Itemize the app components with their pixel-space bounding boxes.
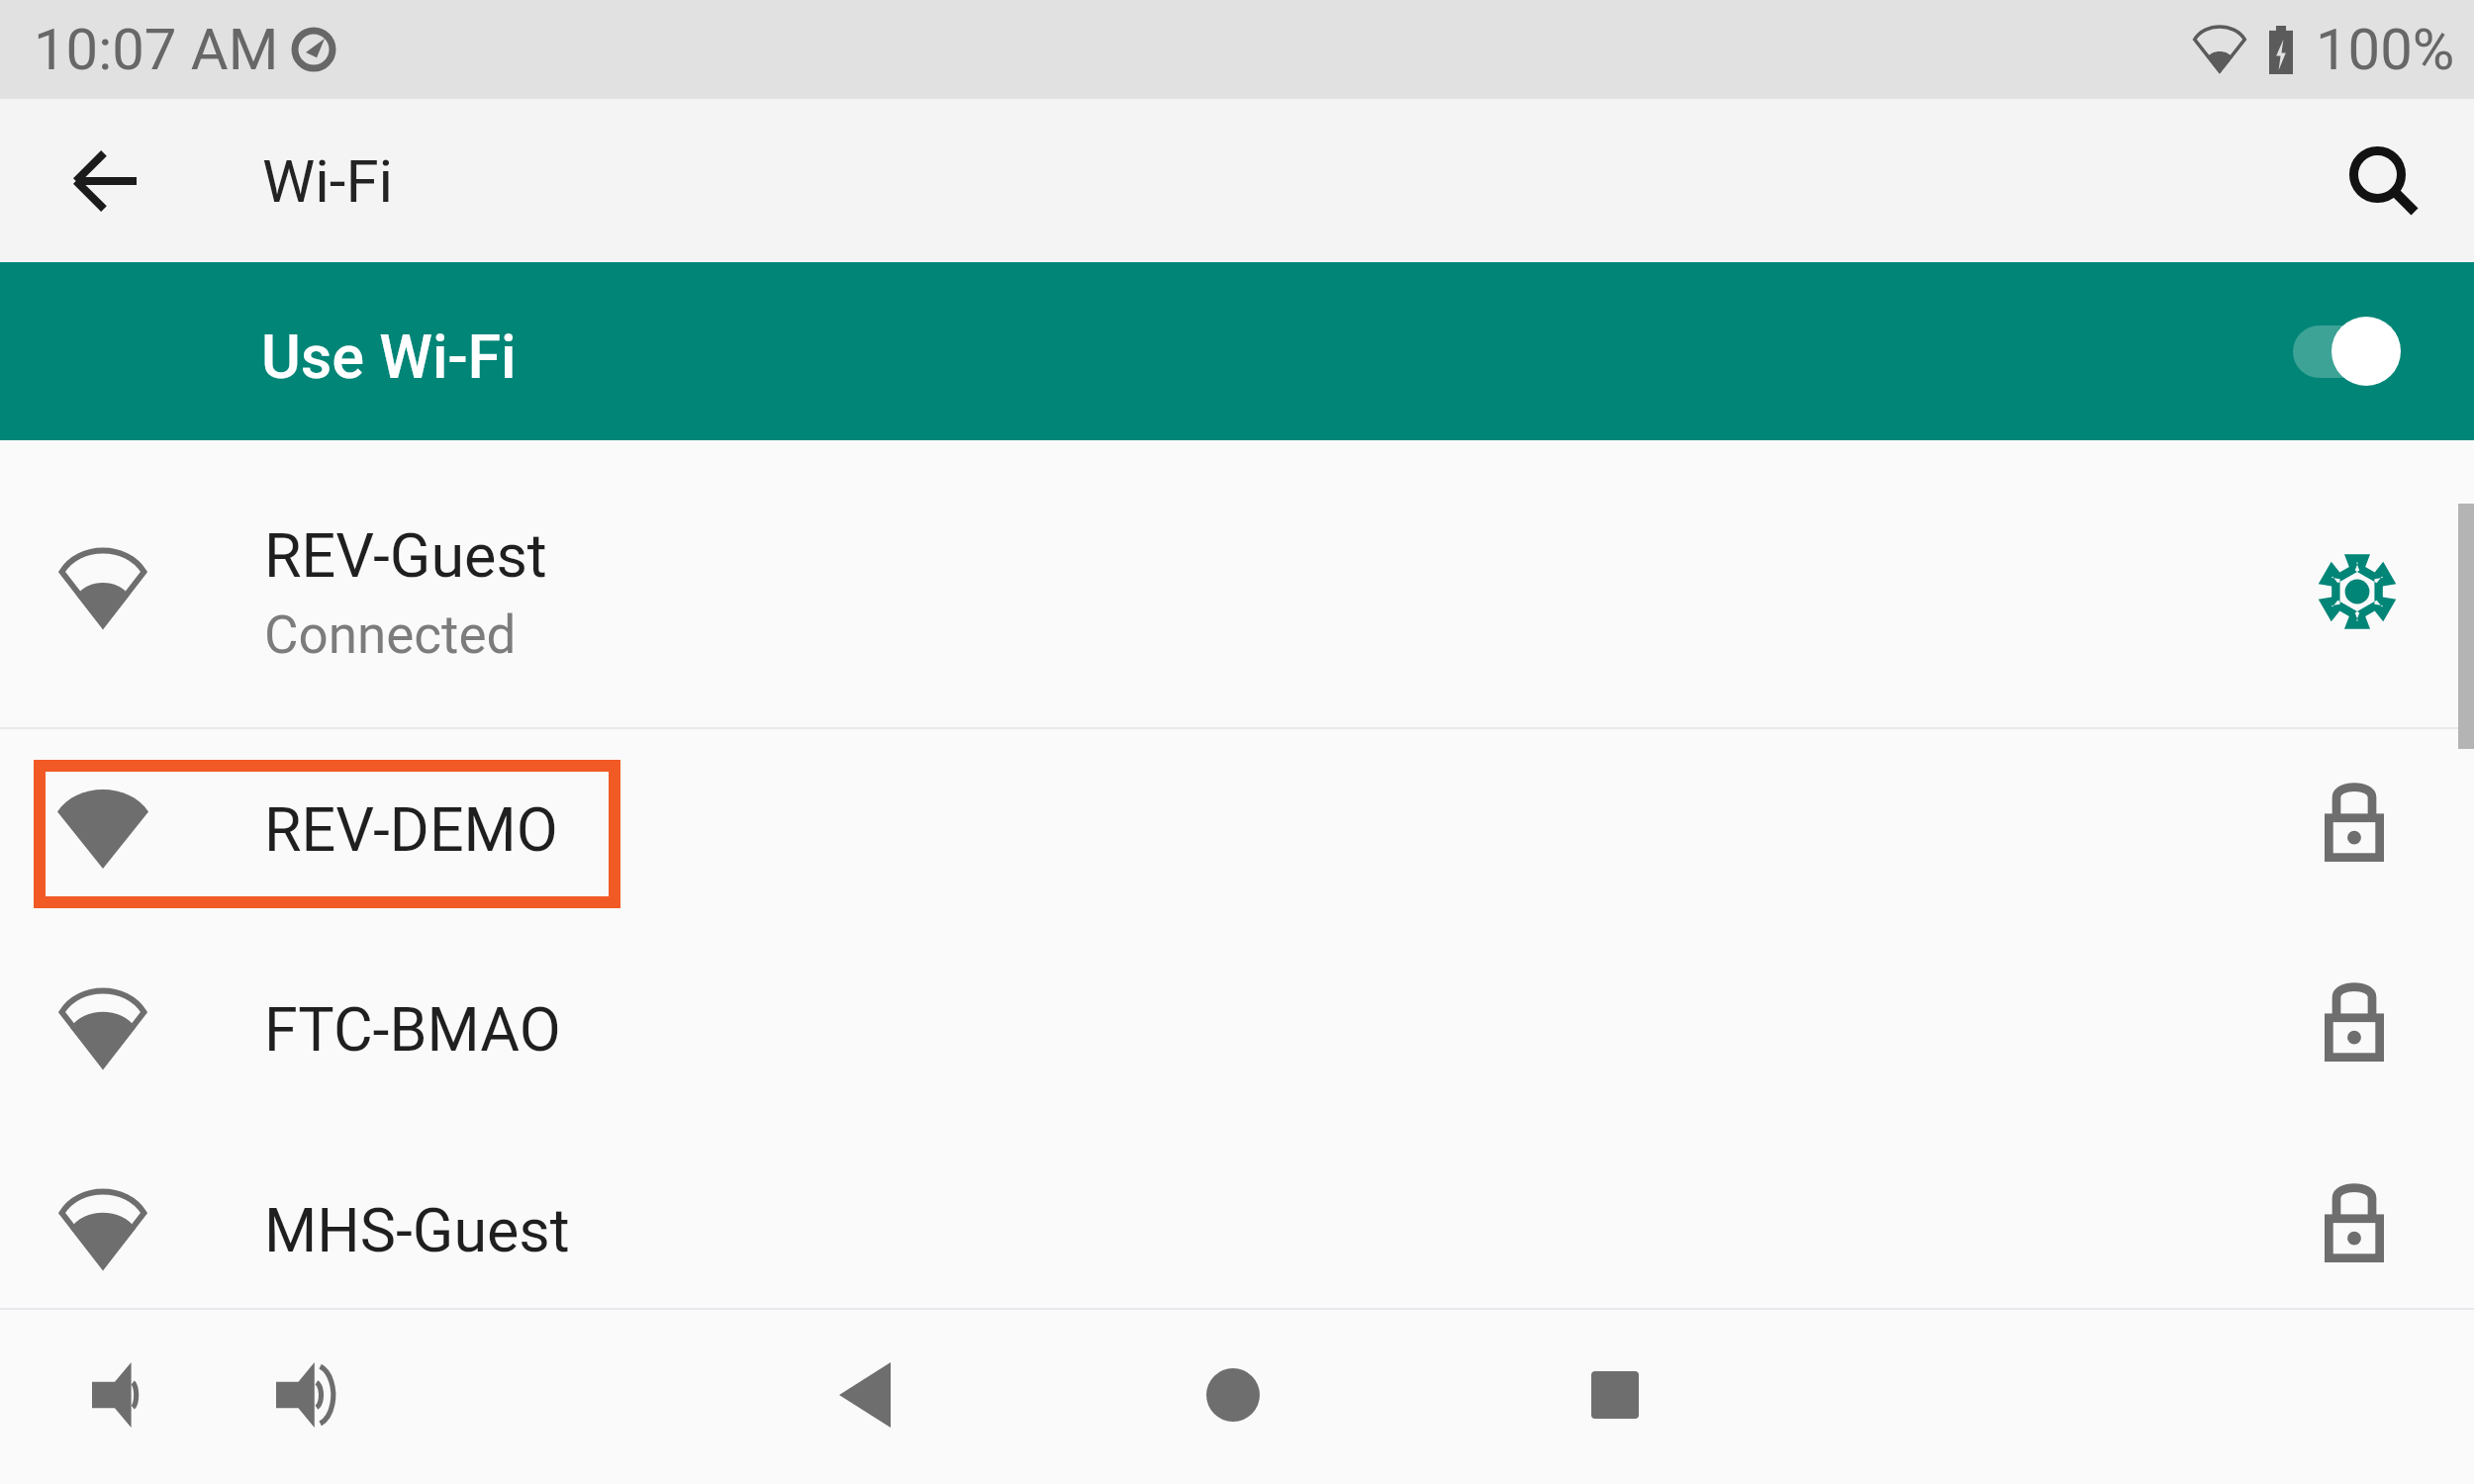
button[interactable]: Back (819, 1349, 910, 1440)
staticText: Connected (264, 604, 517, 666)
staticText: FTC-BMAO (264, 994, 561, 1065)
button[interactable]: FTC-BMAO (0, 928, 2474, 1129)
button[interactable]: Network settings (2318, 552, 2397, 631)
staticText: MHS-Guest (264, 1195, 570, 1265)
button[interactable]: MHS-Guest (0, 1129, 2474, 1308)
other: Secured network (2325, 1184, 2384, 1262)
button[interactable]: Search (2349, 146, 2419, 216)
other: Secured network (2325, 784, 2384, 862)
staticText: 10:07 AM (34, 16, 279, 83)
button[interactable]: Navigate up (73, 150, 137, 212)
staticText: 100% (2316, 16, 2455, 83)
staticText: Wi-Fi (262, 146, 394, 216)
button[interactable]: Home (1188, 1349, 1279, 1440)
button[interactable]: REV-DEMO (0, 729, 2474, 928)
button[interactable]: Use Wi-Fi (0, 262, 2474, 440)
other: Secured network (2325, 983, 2384, 1062)
staticText: Use Wi-Fi (261, 322, 517, 392)
staticText: REV-DEMO (264, 794, 558, 865)
button[interactable]: Recent apps (1570, 1349, 1661, 1440)
button[interactable]: Volume up (264, 1349, 355, 1440)
button[interactable]: Volume down (76, 1349, 167, 1440)
button[interactable]: Use Wi-Fi, on (2285, 311, 2410, 392)
button[interactable]: REV-Guest (0, 440, 2474, 727)
staticText: REV-Guest (264, 520, 547, 591)
